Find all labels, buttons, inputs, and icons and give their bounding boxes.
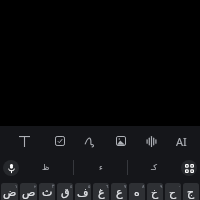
staticText: ٣ xyxy=(52,184,55,189)
button[interactable]: ظ xyxy=(19,158,73,176)
button[interactable]: ء xyxy=(74,158,127,176)
staticText: ١ xyxy=(15,184,18,189)
staticText: ٢ xyxy=(34,184,37,189)
button[interactable]: AI assist xyxy=(175,134,187,148)
staticText: AI xyxy=(176,134,187,148)
staticText: ق xyxy=(61,186,70,199)
button[interactable]: ٨ xyxy=(129,183,145,200)
button[interactable]: Format text xyxy=(18,134,30,148)
button[interactable]: Insert image xyxy=(115,134,127,148)
button[interactable]: Voice input xyxy=(3,160,19,176)
button[interactable]: ٦ xyxy=(93,183,109,200)
button[interactable]: ٧ xyxy=(111,183,127,200)
staticText: كـ xyxy=(151,163,158,172)
staticText: غ xyxy=(98,186,105,199)
staticText: ٠ xyxy=(178,184,181,189)
button[interactable]: ٢ xyxy=(20,183,37,200)
staticText: ع xyxy=(116,186,123,199)
staticText: ص xyxy=(22,186,36,199)
button[interactable]: كـ xyxy=(128,158,181,176)
button[interactable]: ١ xyxy=(1,183,18,200)
staticText: ج xyxy=(187,186,195,199)
button[interactable]: ٠ xyxy=(165,183,181,200)
button[interactable]: ٣ xyxy=(39,183,55,200)
staticText: ظ xyxy=(42,163,50,172)
staticText: ٦ xyxy=(106,184,109,189)
staticText: ض xyxy=(3,186,17,199)
button[interactable]: Draw xyxy=(84,134,96,148)
staticText: ه xyxy=(134,186,140,199)
staticText: ٤ xyxy=(70,184,73,189)
staticText: ٨ xyxy=(142,184,145,189)
staticText: ف xyxy=(77,186,89,199)
staticText: ٧ xyxy=(124,184,127,189)
button[interactable]: ٤ xyxy=(57,183,73,200)
button[interactable]: Keyboard options xyxy=(181,160,197,176)
button[interactable]: Voice recording xyxy=(145,134,157,148)
button[interactable]: Checklist xyxy=(54,134,66,148)
staticText: ح xyxy=(169,186,177,199)
staticText: ث xyxy=(42,186,53,199)
staticText: خ xyxy=(151,186,159,199)
button[interactable]: ٩ xyxy=(147,183,163,200)
button[interactable]: ٥ xyxy=(75,183,91,200)
staticText: ٥ xyxy=(88,184,91,189)
staticText: ء xyxy=(99,163,103,172)
button[interactable]: ج xyxy=(183,183,199,200)
staticText: ٩ xyxy=(160,184,163,189)
